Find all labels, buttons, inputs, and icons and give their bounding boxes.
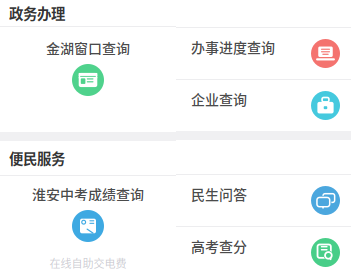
staticText: 企业查询 [191,89,247,109]
button[interactable]: 金湖窗口查询 [0,27,176,132]
button[interactable]: 企业查询 [176,80,351,131]
staticText: 在线自助交电费 [49,255,126,271]
button[interactable]: 民生问答 [176,175,351,226]
button[interactable]: 高考查分 [176,227,351,278]
staticText: 政务办理 [9,3,65,23]
staticText: 淮安中考成绩查询 [32,184,144,204]
button[interactable]: 淮安中考成绩查询 [0,176,176,252]
button[interactable]: 办事进度查询 [176,28,351,79]
staticText: 办事进度查询 [191,37,275,57]
staticText: 金湖窗口查询 [46,38,130,58]
staticText: 民生问答 [191,184,247,204]
staticText: 高考查分 [191,236,247,256]
staticText: 便民服务 [9,148,65,168]
